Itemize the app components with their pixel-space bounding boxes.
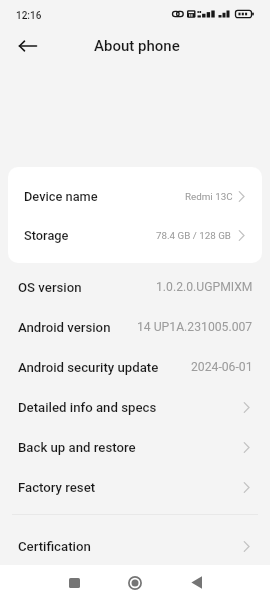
button[interactable]: Back [15,33,41,59]
staticText: 14 UP1A.231005.007 [137,320,253,334]
staticText: About phone [94,37,180,55]
staticText: Redmi 13C [185,191,233,202]
staticText: 1.0.2.0.UGPMIXM [156,280,253,294]
staticText: Back up and restore [18,440,136,455]
staticText: Factory reset [18,480,96,495]
staticText: OS version [18,280,82,295]
button[interactable]: Android security update [0,347,270,387]
button[interactable]: Back [166,567,227,598]
button[interactable]: Back up and restore [0,427,270,467]
button[interactable]: Detailed info and specs [0,387,270,427]
staticText: 12:16 [16,10,42,22]
staticText: Android security update [18,360,159,375]
button[interactable]: Certification [0,526,270,566]
staticText: Android version [18,320,111,335]
staticText: Certification [18,539,91,554]
button[interactable]: Device name [8,177,262,216]
staticText: 2024-06-01 [191,360,253,374]
button[interactable]: Recent apps [44,567,105,598]
button[interactable]: Home [105,567,165,598]
button[interactable]: Storage [8,216,262,255]
button[interactable]: Factory reset [0,467,270,507]
staticText: 78.4 GB / 128 GB [156,230,231,241]
staticText: Storage [24,228,69,243]
staticText: Detailed info and specs [18,400,157,415]
button[interactable]: Android version [0,307,270,347]
staticText: Device name [24,189,98,204]
button[interactable]: OS version [0,267,270,307]
